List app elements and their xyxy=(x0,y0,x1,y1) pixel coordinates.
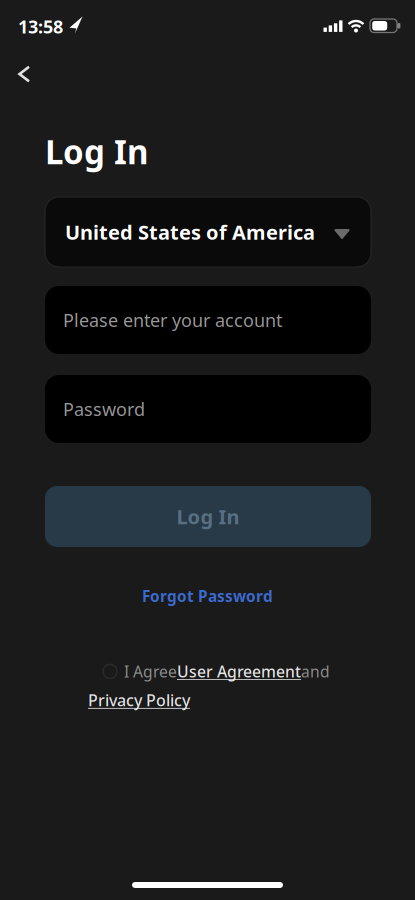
staticText: Forgot Password xyxy=(142,586,273,606)
staticText: Please enter your account xyxy=(63,308,282,332)
button[interactable]: United States of America xyxy=(45,197,371,267)
staticText: I Agree xyxy=(124,661,177,682)
staticText: Log In xyxy=(176,503,239,530)
staticText: United States of America xyxy=(65,219,315,245)
button[interactable]: I Agree User Agreement and xyxy=(103,661,330,682)
button[interactable]: Password xyxy=(45,375,371,443)
button[interactable]: Privacy Policy xyxy=(88,689,190,711)
button[interactable]: Please enter your account xyxy=(45,286,371,354)
staticText: 13:58 xyxy=(18,14,63,38)
staticText: and xyxy=(301,661,330,682)
staticText: Log In xyxy=(45,129,148,173)
button[interactable]: Log In xyxy=(45,486,371,547)
staticText: Privacy Policy xyxy=(88,689,190,711)
staticText: User Agreement xyxy=(177,661,301,682)
staticText: Password xyxy=(63,397,145,421)
button[interactable]: Forgot Password xyxy=(142,586,273,606)
button[interactable]: Back xyxy=(10,58,38,90)
